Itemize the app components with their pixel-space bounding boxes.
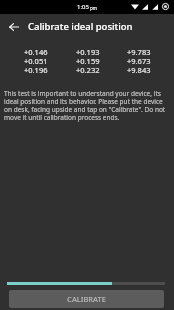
staticText: 1:05 xyxy=(77,3,89,11)
staticText: +0.232 xyxy=(76,65,100,74)
staticText: pm xyxy=(90,5,97,11)
staticText: +0.146 xyxy=(24,47,48,56)
button[interactable]: CALIBRATE xyxy=(9,290,164,308)
staticText: +9.843 xyxy=(127,65,151,74)
button[interactable]: Back xyxy=(0,14,28,39)
staticText: +0.051 xyxy=(24,56,48,65)
staticText: +0.196 xyxy=(24,65,48,74)
staticText: +0.159 xyxy=(76,56,100,65)
staticText: Calibrate ideal position xyxy=(28,20,133,33)
staticText: This test is important to understand you… xyxy=(4,89,170,122)
staticText: +9.783 xyxy=(127,47,151,56)
staticText: CALIBRATE xyxy=(67,294,106,304)
staticText: +9.673 xyxy=(127,56,151,65)
staticText: +0.193 xyxy=(76,47,100,56)
